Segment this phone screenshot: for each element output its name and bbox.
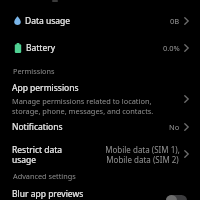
staticText: Battery <box>26 42 56 54</box>
button[interactable]: Battery <box>0 34 200 61</box>
staticText: Permissions <box>13 66 55 76</box>
staticText: 0B <box>170 16 180 26</box>
staticText: Blur app previews <box>12 188 84 200</box>
button[interactable]: Notifications <box>0 115 200 138</box>
staticText: Manage permissions related to location, … <box>12 96 154 116</box>
button[interactable]: App permissions <box>0 82 200 116</box>
button[interactable]: Blur app previews <box>0 181 200 200</box>
staticText: Advanced settings <box>13 171 76 181</box>
staticText: Restrict data usage <box>12 144 63 165</box>
button[interactable]: Restrict data usage <box>0 139 200 169</box>
staticText: No <box>169 122 180 132</box>
staticText: App permissions <box>12 82 79 94</box>
button[interactable]: Data usage <box>0 7 200 34</box>
staticText: Data usage <box>25 15 71 27</box>
staticText: Mobile data (SIM 1), Mobile data (SIM 2) <box>105 144 180 165</box>
staticText: 0.0% <box>163 43 180 53</box>
staticText: Notifications <box>12 121 63 133</box>
